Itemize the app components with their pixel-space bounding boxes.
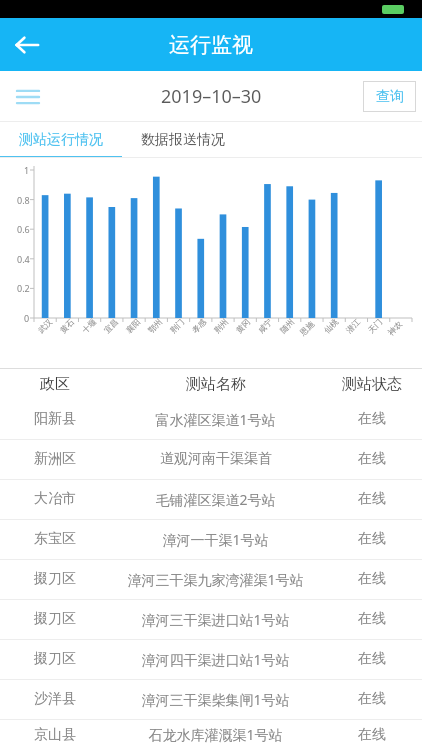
staticText: 在线 — [358, 650, 386, 668]
staticText: 恩施州 — [298, 315, 320, 337]
staticText: 测站运行情况 — [19, 131, 103, 149]
button[interactable]: Menu — [6, 75, 50, 119]
button[interactable]: 测站运行情况 — [0, 122, 122, 158]
staticText: 漳河三干渠进口站1号站 — [141, 610, 290, 629]
button[interactable]: Back — [4, 22, 50, 68]
staticText: 大冶市 — [34, 490, 76, 508]
staticText: 在线 — [358, 570, 386, 588]
button[interactable]: 大冶市 — [0, 479, 422, 519]
staticText: 掇刀区 — [34, 570, 76, 588]
button[interactable]: 东宝区 — [0, 519, 422, 559]
staticText: 在线 — [358, 610, 386, 628]
button[interactable]: 新洲区 — [0, 439, 422, 479]
staticText: 掇刀区 — [34, 650, 76, 668]
staticText: 黄冈 — [234, 317, 252, 335]
staticText: 0.8 — [17, 194, 30, 206]
staticText: 武汉 — [36, 317, 54, 335]
staticText: 0.6 — [17, 223, 30, 235]
staticText: 漳河三干渠柴集闸1号站 — [141, 690, 290, 709]
staticText: 荆门 — [168, 317, 186, 335]
staticText: 2019–10–30 — [161, 84, 262, 109]
staticText: 沙洋县 — [34, 690, 76, 708]
staticText: 道观河南干渠渠首 — [160, 450, 272, 468]
staticText: 漳河四干渠进口站1号站 — [141, 650, 290, 669]
staticText: 荆州 — [212, 317, 230, 335]
staticText: 在线 — [358, 690, 386, 708]
staticText: 十堰 — [80, 317, 98, 335]
staticText: 测站状态 — [342, 375, 402, 394]
staticText: 仙桃 — [322, 317, 340, 335]
button[interactable]: 数据报送情况 — [122, 122, 244, 158]
button[interactable]: 掇刀区 — [0, 639, 422, 679]
staticText: 襄阳 — [124, 317, 142, 335]
staticText: 神农架 — [386, 315, 408, 337]
staticText: 阳新县 — [34, 410, 76, 428]
staticText: 天门 — [366, 317, 384, 335]
staticText: 漳河一干渠1号站 — [162, 530, 269, 549]
button[interactable]: 查询 — [363, 81, 416, 112]
staticText: 京山县 — [34, 726, 76, 744]
staticText: 潜江 — [344, 317, 362, 335]
staticText: 东宝区 — [34, 530, 76, 548]
staticText: 0 — [24, 312, 30, 324]
staticText: 查询 — [376, 88, 404, 106]
button[interactable]: 掇刀区 — [0, 599, 422, 639]
staticText: 黄石 — [58, 317, 76, 335]
button[interactable]: 阳新县 — [0, 399, 422, 439]
staticText: 随州 — [278, 317, 296, 335]
staticText: 在线 — [358, 490, 386, 508]
staticText: 在线 — [358, 530, 386, 548]
staticText: 石龙水库灌溉渠1号站 — [148, 725, 283, 744]
staticText: 1 — [24, 164, 30, 176]
staticText: 宜昌 — [102, 317, 120, 335]
staticText: 掇刀区 — [34, 610, 76, 628]
staticText: 测站名称 — [186, 375, 246, 394]
staticText: 富水灌区渠道1号站 — [155, 410, 276, 429]
staticText: 在线 — [358, 726, 386, 744]
button[interactable]: 沙洋县 — [0, 679, 422, 719]
staticText: 孝感 — [190, 317, 208, 335]
staticText: 咸宁 — [256, 317, 274, 335]
button[interactable]: 掇刀区 — [0, 559, 422, 599]
staticText: 鄂州 — [146, 317, 164, 335]
staticText: 数据报送情况 — [141, 131, 225, 149]
button[interactable]: 京山县 — [0, 719, 422, 750]
staticText: 运行监视 — [169, 32, 253, 58]
staticText: 毛铺灌区渠道2号站 — [155, 490, 276, 509]
staticText: 新洲区 — [34, 450, 76, 468]
staticText: 漳河三干渠九家湾灌渠1号站 — [127, 570, 304, 589]
staticText: 政区 — [40, 375, 70, 394]
staticText: 0.4 — [17, 253, 30, 265]
staticText: 在线 — [358, 450, 386, 468]
staticText: 0.2 — [17, 282, 30, 294]
staticText: 在线 — [358, 410, 386, 428]
